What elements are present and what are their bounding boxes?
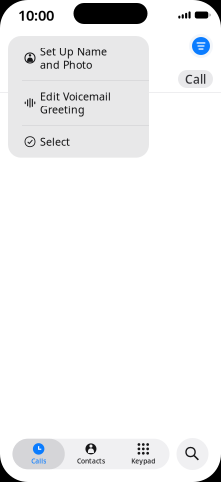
button[interactable]: Contacts (65, 439, 117, 469)
staticText: Calls (31, 456, 46, 465)
staticText: Keypad (131, 456, 155, 465)
staticText: Call (185, 71, 206, 87)
staticText: and Photo (40, 57, 92, 72)
staticText: 10:00 (18, 5, 54, 25)
button[interactable]: Calls (12, 439, 65, 469)
button[interactable]: Call (178, 70, 213, 88)
button[interactable]: Filter calls (189, 34, 213, 58)
staticText: Contacts (77, 456, 105, 465)
staticText: Edit Voicemail (40, 89, 111, 103)
staticText: Greeting (40, 102, 85, 116)
button[interactable]: Set Up Name (8, 36, 149, 80)
staticText: Set Up Name (40, 44, 107, 58)
staticText: Select (40, 135, 70, 149)
button[interactable]: Keypad (117, 439, 169, 469)
button[interactable]: Edit Voicemail (8, 81, 149, 125)
button[interactable]: Select (8, 126, 149, 158)
button[interactable]: Search (176, 438, 208, 470)
